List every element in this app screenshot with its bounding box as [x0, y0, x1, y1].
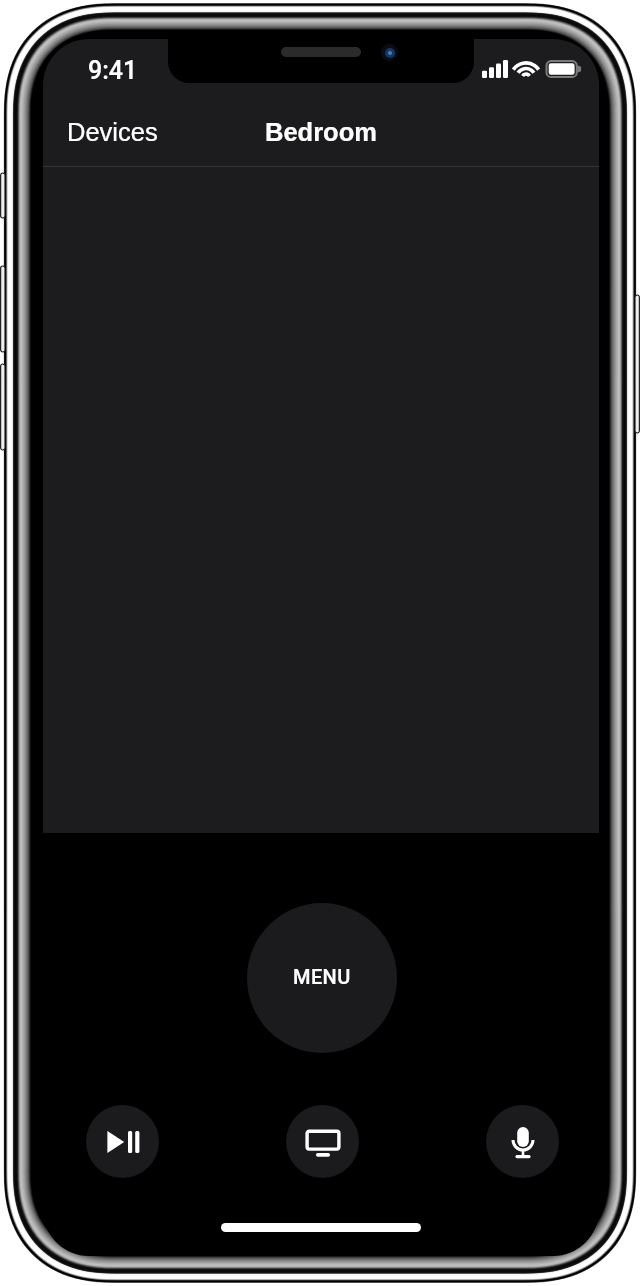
button[interactable]: Play or pause	[86, 1105, 159, 1178]
button[interactable]: MENU	[247, 903, 397, 1053]
button[interactable]: Devices	[59, 108, 166, 156]
staticText: Devices	[67, 118, 158, 146]
staticText: MENU	[293, 965, 351, 988]
button[interactable]: TV	[286, 1105, 359, 1178]
button[interactable]: Siri	[486, 1105, 559, 1178]
staticText: Bedroom	[265, 118, 377, 146]
staticText: 9:41	[88, 56, 138, 85]
